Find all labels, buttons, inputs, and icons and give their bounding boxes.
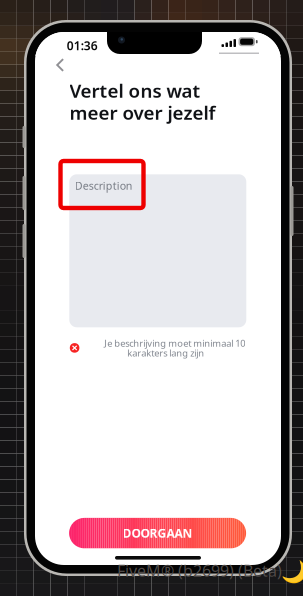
- staticText: meer over jezelf: [69, 100, 215, 125]
- staticText: DOORGAAN: [123, 525, 193, 541]
- staticText: karakters lang zijn: [127, 347, 204, 359]
- staticText: Je beschrijving moet minimaal 10: [104, 337, 245, 349]
- staticText: Description: [75, 178, 133, 193]
- staticText: Vertel ons wat: [69, 78, 200, 103]
- staticText: 01:36: [67, 38, 98, 53]
- button[interactable]: DOORGAAN: [69, 518, 246, 548]
- staticText: 🌙: [281, 560, 303, 584]
- staticText: FiveM® (b2699) (Beta): [117, 560, 282, 581]
- button[interactable]: Back: [49, 50, 79, 80]
